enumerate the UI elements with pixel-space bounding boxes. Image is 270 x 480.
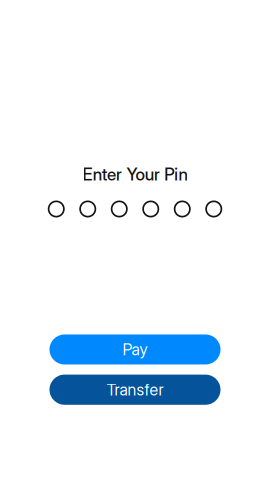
button[interactable]: Transfer [49,375,220,405]
staticText: Pay [122,340,147,359]
button[interactable]: Pay [49,334,220,364]
staticText: Transfer [106,380,163,399]
staticText: Enter Your Pin [82,164,187,184]
